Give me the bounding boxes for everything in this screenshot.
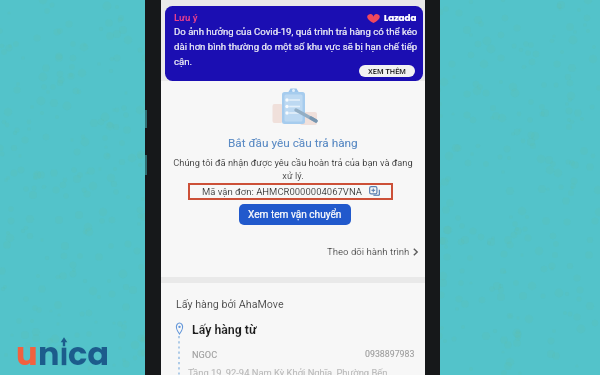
button[interactable]: Xem tem vận chuyển (239, 204, 351, 225)
staticText: n (38, 331, 60, 375)
staticText: Bắt đầu yêu cầu trả hàng (228, 136, 358, 150)
staticText: Xem tem vận chuyển (248, 209, 342, 221)
other: Copy tracking number (369, 186, 380, 197)
staticText: 0938897983 (365, 349, 415, 359)
staticText: u (16, 331, 38, 375)
staticText: Chúng tôi đã nhận được yêu cầu hoàn trả … (167, 157, 419, 181)
button[interactable]: Mã vận đơn: AHMCR0000004067VNA (188, 183, 393, 200)
staticText: XEM THÊM (368, 67, 406, 76)
other: Pickup location (176, 323, 183, 334)
staticText: ca (68, 331, 110, 375)
staticText: Mã vận đơn: AHMCR0000004067VNA (202, 186, 362, 197)
staticText: Tầng 19, 92-94 Nam Kỳ Khởi Nghĩa, Phường… (188, 367, 388, 375)
button[interactable]: Theo dõi hành trình (161, 246, 425, 257)
staticText: Theo dõi hành trình (327, 246, 410, 257)
staticText: Lazada (384, 12, 417, 24)
staticText: Lấy hàng bởi AhaMove (176, 298, 284, 311)
button[interactable]: XEM THÊM (359, 65, 415, 77)
staticText: Lưu ý (174, 12, 198, 23)
staticText: NGOC (192, 349, 218, 360)
staticText: Lấy hàng từ (192, 323, 257, 337)
staticText: Do ảnh hưởng của Covid-19, quá trình trả… (174, 26, 419, 67)
